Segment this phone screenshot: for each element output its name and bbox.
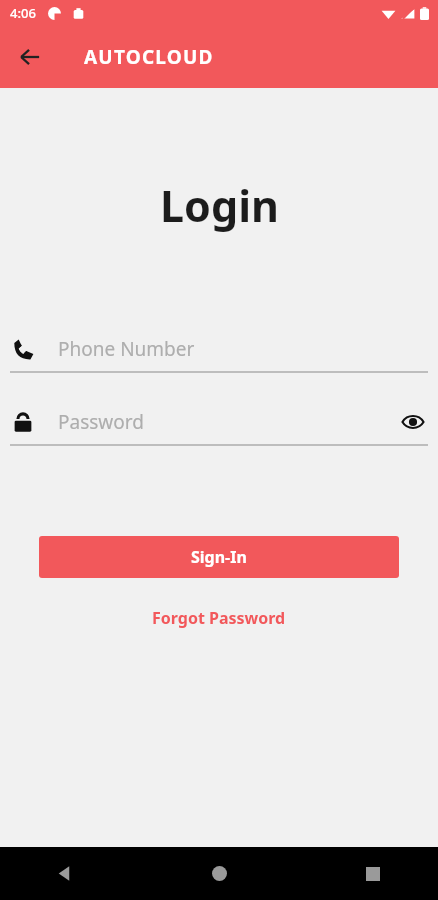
button[interactable]: Password <box>10 400 428 444</box>
staticText: AUTOCLOUD <box>84 44 214 70</box>
button[interactable]: Home <box>146 847 292 900</box>
button[interactable]: Sign-In <box>39 536 399 578</box>
staticText: Login <box>160 176 279 235</box>
button[interactable]: Recent apps <box>292 847 438 900</box>
staticText: Forgot Password <box>152 607 286 629</box>
staticText: Phone Number <box>58 336 195 362</box>
staticText: Sign-In <box>191 546 247 568</box>
button[interactable]: Phone Number <box>10 327 428 371</box>
button[interactable]: Back <box>0 847 146 900</box>
staticText: Password <box>58 409 144 435</box>
button[interactable]: Forgot Password <box>140 603 298 633</box>
button[interactable]: Back <box>6 33 54 81</box>
button[interactable]: Toggle password visibility <box>398 407 428 437</box>
staticText: 4:06 <box>10 4 36 22</box>
